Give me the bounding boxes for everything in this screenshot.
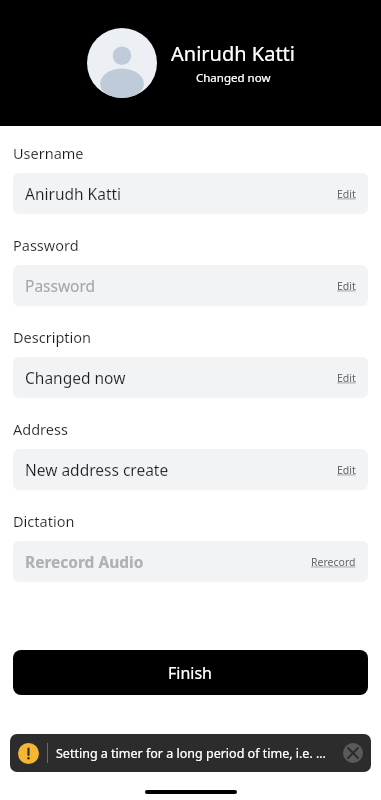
- staticText: Setting a timer for a long period of tim…: [56, 745, 337, 762]
- staticText: Edit: [337, 463, 356, 477]
- staticText: Anirudh Katti: [25, 183, 122, 204]
- button[interactable]: Rerecord: [305, 551, 356, 573]
- button[interactable]: Finish: [13, 650, 368, 695]
- button[interactable]: Dismiss: [343, 743, 363, 763]
- button[interactable]: Changed now: [13, 357, 368, 398]
- button[interactable]: Anirudh Katti: [13, 173, 368, 214]
- button[interactable]: New address create: [13, 449, 368, 490]
- staticText: Anirudh Katti: [171, 40, 295, 67]
- button[interactable]: Edit: [331, 459, 356, 481]
- button[interactable]: Setting a timer for a long period of tim…: [10, 734, 371, 772]
- button[interactable]: Edit: [331, 275, 356, 297]
- staticText: Finish: [168, 662, 213, 684]
- other: Profile photo: [87, 28, 157, 98]
- button[interactable]: Password: [13, 265, 368, 306]
- button[interactable]: Rerecord Audio: [13, 541, 368, 582]
- staticText: Edit: [337, 187, 356, 201]
- staticText: Dictation: [13, 511, 75, 531]
- button[interactable]: Edit: [331, 183, 356, 205]
- staticText: Password: [25, 275, 96, 296]
- staticText: Username: [13, 143, 84, 163]
- staticText: Rerecord: [311, 555, 356, 569]
- staticText: Password: [13, 235, 79, 255]
- button[interactable]: Edit: [331, 367, 356, 389]
- staticText: Rerecord Audio: [25, 551, 144, 572]
- staticText: Changed now: [196, 70, 271, 86]
- staticText: Description: [13, 327, 92, 347]
- staticText: Address: [13, 419, 68, 439]
- staticText: New address create: [25, 459, 169, 480]
- staticText: Edit: [337, 279, 356, 293]
- staticText: Changed now: [25, 367, 126, 388]
- staticText: Edit: [337, 371, 356, 385]
